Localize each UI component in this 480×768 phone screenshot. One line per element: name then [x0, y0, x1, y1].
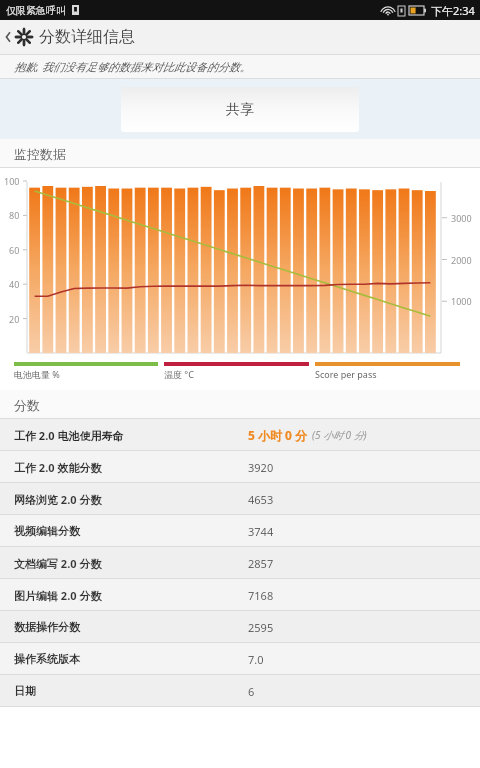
button[interactable]: 操作系统版本: [0, 643, 480, 675]
staticText: 图片编辑 2.0 分数: [14, 588, 102, 603]
staticText: 仅限紧急呼叫: [6, 4, 66, 17]
button[interactable]: 工作 2.0 效能分数: [0, 451, 480, 483]
staticText: 共享: [226, 101, 254, 119]
button[interactable]: 图片编辑 2.0 分数: [0, 579, 480, 611]
staticText: 抱歉, 我们没有足够的数据来对比此设备的分数。: [14, 59, 251, 74]
staticText: 下午2:34: [431, 3, 475, 18]
staticText: 视频编辑分数: [14, 524, 80, 538]
staticText: 电池电量 %: [14, 368, 60, 380]
staticText: 6: [248, 684, 255, 699]
button[interactable]: 工作 2.0 电池使用寿命: [0, 419, 480, 451]
staticText: 7168: [248, 588, 274, 603]
staticText: 3920: [248, 460, 274, 475]
staticText: 3744: [248, 524, 274, 539]
staticText: 工作 2.0 电池使用寿命: [14, 428, 124, 443]
staticText: 操作系统版本: [14, 652, 80, 666]
staticText: (5 小时 0 分): [312, 428, 367, 442]
button[interactable]: 视频编辑分数: [0, 515, 480, 547]
staticText: 监控数据: [14, 146, 66, 162]
button[interactable]: Back: [0, 20, 480, 54]
staticText: 2595: [248, 620, 274, 635]
staticText: 网络浏览 2.0 分数: [14, 492, 102, 507]
button[interactable]: 文档编写 2.0 分数: [0, 547, 480, 579]
staticText: 文档编写 2.0 分数: [14, 556, 102, 571]
staticText: 5 小时 0 分: [248, 427, 308, 443]
button[interactable]: 网络浏览 2.0 分数: [0, 483, 480, 515]
staticText: 2857: [248, 556, 274, 571]
staticText: 工作 2.0 效能分数: [14, 460, 102, 475]
button[interactable]: 日期: [0, 675, 480, 707]
button[interactable]: 共享: [121, 87, 359, 132]
staticText: 温度 °C: [164, 368, 194, 380]
staticText: 7.0: [248, 652, 264, 667]
staticText: Score per pass: [315, 368, 377, 380]
staticText: 数据操作分数: [14, 620, 80, 634]
button[interactable]: 数据操作分数: [0, 611, 480, 643]
staticText: 4653: [248, 492, 274, 507]
staticText: 日期: [14, 684, 36, 698]
staticText: 分数: [14, 397, 40, 413]
staticText: 分数详细信息: [39, 27, 135, 47]
